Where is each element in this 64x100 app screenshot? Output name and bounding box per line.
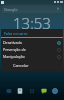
staticText: 13:53 — [13, 13, 51, 33]
button[interactable]: Browser — [52, 88, 58, 94]
button[interactable]: Desativado — [1, 39, 63, 46]
button[interactable]: Messaging — [41, 88, 47, 94]
button[interactable]: People — [17, 88, 23, 94]
staticText: Google — [4, 7, 18, 12]
button[interactable]: Apps — [29, 88, 35, 94]
button[interactable]: Phone — [6, 88, 12, 94]
staticText: Desativado — [3, 40, 22, 45]
staticText: Manipulação — [3, 54, 25, 59]
button[interactable]: Google — [2, 5, 62, 13]
staticText: Prevenção de — [3, 47, 26, 52]
button[interactable]: Manipulação — [1, 53, 63, 60]
staticText: Cancelar — [13, 63, 29, 68]
button[interactable]: Cancelar — [1, 62, 33, 70]
staticText: Falar no carro — [4, 31, 28, 36]
button[interactable]: Prevenção de — [1, 46, 63, 53]
